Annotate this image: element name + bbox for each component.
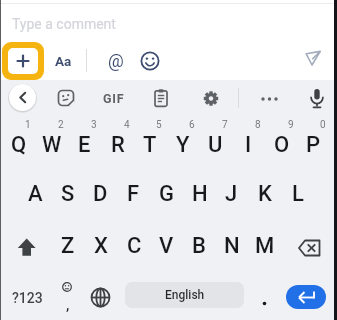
staticText: R — [111, 132, 125, 158]
staticText: D — [93, 181, 108, 207]
button[interactable]: T — [133, 123, 166, 167]
button[interactable]: R — [101, 123, 134, 167]
staticText: C — [127, 233, 142, 259]
staticText: Aa — [55, 53, 72, 69]
staticText: F — [127, 181, 140, 207]
staticText: A — [28, 181, 43, 207]
button[interactable]: O — [265, 123, 298, 167]
button[interactable]: H — [183, 170, 216, 218]
staticText: 6 — [189, 119, 195, 131]
staticText: ?123 — [12, 290, 43, 306]
button[interactable] — [250, 275, 280, 315]
staticText: Type a comment — [12, 16, 116, 32]
button[interactable]: W — [35, 123, 68, 167]
staticText: 5 — [156, 119, 162, 131]
staticText: P — [306, 132, 321, 158]
staticText: H — [192, 181, 208, 207]
staticText: L — [292, 181, 304, 207]
staticText: Y — [176, 132, 190, 158]
button[interactable]: Z — [52, 222, 84, 270]
button[interactable]: Aa — [46, 48, 80, 74]
button[interactable]: L — [281, 170, 314, 218]
button[interactable] — [2, 42, 44, 80]
button[interactable]: E — [68, 123, 101, 167]
button[interactable]: S — [51, 170, 84, 218]
button[interactable] — [151, 88, 171, 108]
staticText: @ — [108, 51, 124, 72]
button[interactable]: Y — [166, 123, 199, 167]
staticText: Z — [61, 233, 75, 259]
button[interactable]: F — [117, 170, 150, 218]
staticText: I — [245, 132, 252, 158]
button[interactable] — [296, 236, 324, 260]
button[interactable] — [307, 87, 327, 110]
staticText: 9 — [288, 119, 294, 131]
button[interactable]: M — [249, 222, 281, 270]
staticText: X — [94, 233, 108, 259]
button[interactable]: @ — [101, 46, 131, 76]
button[interactable] — [304, 48, 324, 68]
staticText: W — [42, 132, 62, 158]
button[interactable] — [9, 84, 36, 111]
button[interactable]: C — [118, 222, 150, 270]
staticText: 8 — [255, 119, 261, 131]
staticText: M — [255, 233, 275, 259]
button[interactable]: V — [150, 222, 182, 270]
staticText: English — [165, 288, 205, 302]
button[interactable]: English — [125, 282, 244, 308]
staticText: 0 — [320, 119, 326, 131]
staticText: 1 — [25, 119, 31, 131]
button[interactable]: K — [248, 170, 281, 218]
button[interactable] — [256, 88, 284, 108]
button[interactable]: D — [84, 170, 117, 218]
staticText: B — [192, 233, 206, 259]
button[interactable] — [89, 286, 112, 309]
button[interactable]: GIF — [96, 86, 132, 110]
staticText: U — [208, 132, 223, 158]
button[interactable]: P — [297, 123, 330, 167]
staticText: N — [224, 233, 240, 259]
button[interactable]: I — [232, 123, 265, 167]
staticText: O — [274, 132, 290, 158]
button[interactable]: X — [85, 222, 117, 270]
staticText: S — [61, 181, 75, 207]
button[interactable]: A — [19, 170, 52, 218]
staticText: V — [159, 233, 174, 259]
staticText: 3 — [91, 119, 97, 131]
button[interactable] — [140, 51, 160, 71]
staticText: 7 — [222, 119, 228, 131]
button[interactable] — [51, 272, 84, 318]
button[interactable] — [286, 285, 326, 309]
button[interactable]: J — [215, 170, 248, 218]
staticText: K — [258, 181, 272, 207]
staticText: , — [66, 294, 70, 314]
staticText: G — [159, 181, 174, 207]
button[interactable] — [14, 234, 40, 260]
staticText: J — [225, 181, 238, 207]
staticText: T — [143, 132, 157, 158]
button[interactable]: U — [199, 123, 232, 167]
staticText: E — [78, 132, 91, 158]
staticText: 4 — [124, 119, 130, 131]
button[interactable]: G — [150, 170, 183, 218]
staticText: GIF — [103, 91, 125, 106]
button[interactable] — [56, 88, 76, 108]
button[interactable] — [201, 88, 221, 108]
staticText: 2 — [58, 119, 64, 131]
button[interactable]: Q — [2, 123, 35, 167]
staticText: Q — [11, 132, 27, 158]
button[interactable]: Type a comment — [12, 14, 172, 34]
button[interactable]: ?123 — [6, 278, 48, 318]
button[interactable]: N — [216, 222, 248, 270]
button[interactable]: B — [183, 222, 215, 270]
